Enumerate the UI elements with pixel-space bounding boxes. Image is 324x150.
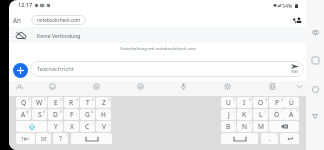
button[interactable]: T [80, 97, 95, 108]
staticText: T [86, 98, 90, 107]
button[interactable]: V [96, 121, 111, 132]
staticText: 2 [44, 97, 46, 102]
staticText: W [36, 98, 43, 107]
button[interactable]: S [32, 109, 47, 120]
staticText: Q [21, 98, 27, 107]
button[interactable]: notebookcheck.com [31, 15, 86, 25]
staticText: ; [109, 121, 110, 126]
button[interactable]: D [48, 109, 63, 120]
button[interactable]: Settings [222, 81, 233, 92]
staticText: D [53, 110, 58, 119]
staticText: X [70, 122, 74, 131]
staticText: : [93, 121, 94, 126]
button[interactable]: L [253, 109, 268, 120]
button[interactable]: C [80, 121, 95, 132]
button[interactable]: Voice input [178, 81, 189, 92]
staticText: * [296, 109, 298, 114]
button[interactable]: Add recipient [290, 13, 304, 27]
staticText: DE [41, 136, 47, 142]
staticText: _ [76, 109, 78, 114]
button[interactable]: E [48, 97, 63, 108]
button[interactable]: key [280, 133, 299, 144]
button[interactable]: key [71, 133, 112, 144]
staticText: notebookcheck.com [37, 17, 81, 23]
button[interactable]: Ä [284, 109, 299, 120]
button[interactable]: Ü [284, 97, 299, 108]
button[interactable]: Add attachment [13, 63, 28, 78]
button[interactable]: X [64, 121, 79, 132]
button[interactable]: Home [307, 81, 323, 97]
button[interactable]: 1#= [16, 133, 35, 144]
staticText: ˇ [48, 133, 50, 138]
button[interactable]: key [269, 121, 299, 132]
button[interactable]: I [237, 97, 252, 108]
button[interactable]: A [16, 109, 31, 120]
staticText: 8 [249, 97, 251, 102]
button[interactable]: H [96, 109, 111, 120]
staticText: , [266, 121, 267, 126]
button[interactable]: Ö [269, 109, 284, 120]
staticText: / [281, 109, 283, 114]
button[interactable]: Y [48, 121, 63, 132]
button[interactable]: J [221, 109, 236, 120]
button[interactable]: Emoji [47, 81, 58, 92]
button[interactable]: DE [36, 133, 51, 144]
button[interactable]: Hide keyboard [294, 81, 305, 92]
button[interactable]: G [80, 109, 95, 120]
button[interactable]: key [221, 133, 258, 144]
button[interactable]: ? [53, 133, 68, 144]
staticText: Ö [274, 110, 280, 119]
staticText: L [259, 110, 263, 119]
staticText: Ü [289, 98, 294, 107]
staticText: Ä [289, 110, 294, 119]
staticText: O [258, 98, 264, 107]
staticText: I [243, 98, 246, 107]
staticText: " [60, 121, 62, 126]
staticText: 5 [92, 97, 94, 102]
staticText: Z [102, 98, 106, 107]
button[interactable]: Z [96, 97, 111, 108]
staticText: H [101, 110, 106, 119]
button[interactable]: Textnachricht [30, 61, 304, 77]
staticText: V [102, 122, 106, 131]
button[interactable]: Back [307, 108, 323, 124]
staticText: ' [77, 121, 78, 126]
staticText: @ [26, 109, 30, 114]
button[interactable]: Clipboard [267, 81, 278, 92]
button[interactable]: key [16, 121, 47, 132]
button[interactable]: . [261, 133, 278, 144]
staticText: U [226, 98, 231, 107]
button[interactable]: Q [16, 97, 31, 108]
staticText: ( [249, 109, 251, 114]
button[interactable]: Recents [307, 52, 323, 68]
button[interactable]: B [221, 121, 236, 132]
staticText: 3 [60, 97, 62, 102]
staticText: F [70, 110, 74, 119]
button[interactable]: Search [14, 81, 25, 92]
staticText: 1 [28, 97, 30, 102]
button[interactable]: P [269, 97, 284, 108]
button[interactable]: U [221, 97, 236, 108]
button[interactable]: Sticker [135, 81, 146, 92]
staticText: Unterhaltung mit notebookcheck.com [120, 45, 196, 51]
button[interactable]: N [237, 121, 252, 132]
staticText: # [43, 109, 46, 114]
button[interactable]: F [64, 109, 79, 120]
staticText: & [91, 109, 94, 114]
button[interactable]: R [64, 97, 79, 108]
staticText: E [54, 98, 58, 107]
button[interactable]: GIF [91, 81, 102, 92]
button[interactable]: O [253, 97, 268, 108]
button[interactable]: W [32, 97, 47, 108]
staticText: M [258, 122, 264, 131]
button[interactable]: Link [307, 24, 323, 40]
staticText: + [233, 109, 235, 114]
staticText: Textnachricht [37, 65, 74, 73]
staticText: R [69, 98, 74, 107]
staticText: An [13, 16, 21, 24]
staticText: G [85, 110, 90, 119]
button[interactable]: M [253, 121, 268, 132]
button[interactable]: K [237, 109, 252, 120]
staticText: Keine Verbindung [37, 32, 81, 39]
staticText: S [38, 110, 42, 119]
